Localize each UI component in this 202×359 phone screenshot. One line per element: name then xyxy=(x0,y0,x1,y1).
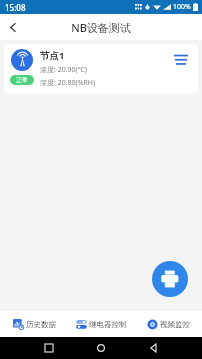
staticText: 历史数据 xyxy=(26,320,56,329)
staticText: NB设备测试 xyxy=(71,20,131,35)
button[interactable]: Print xyxy=(152,261,188,297)
staticText: 正常 xyxy=(16,76,28,84)
staticText: 节点1 xyxy=(40,49,65,62)
other: Recents xyxy=(45,344,53,352)
staticText: 湿度: 20.80(%RH) xyxy=(40,78,96,88)
other: Home xyxy=(97,344,105,352)
staticText: 100% xyxy=(173,2,191,12)
button[interactable]: Back xyxy=(0,14,26,40)
other: Back xyxy=(150,344,158,352)
button[interactable]: 继电器控制 xyxy=(68,311,135,337)
staticText: 视频监控 xyxy=(160,320,190,329)
staticText: 继电器控制 xyxy=(89,320,127,329)
button[interactable]: 视频监控 xyxy=(135,311,202,337)
button[interactable]: Menu xyxy=(170,49,192,71)
staticText: 温度: 20.90(℃) xyxy=(40,65,87,75)
button[interactable]: 历史数据 xyxy=(0,311,68,337)
button[interactable]: 正常 xyxy=(4,44,198,93)
staticText: 15:08 xyxy=(5,2,26,13)
